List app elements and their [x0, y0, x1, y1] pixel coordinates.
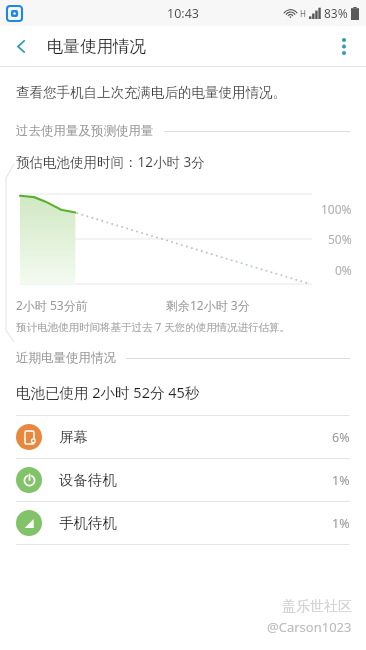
staticText: 50% — [328, 231, 352, 247]
staticText: 手机待机 — [59, 514, 117, 532]
button[interactable]: More options — [322, 26, 366, 66]
staticText: 2小时 53分前 — [16, 297, 88, 313]
staticText: 1% — [332, 472, 350, 489]
staticText: @Carson1023 — [267, 618, 352, 636]
staticText: 电量使用情况 — [47, 36, 146, 57]
staticText: 预估电池使用时间：12小时 3分 — [16, 153, 205, 171]
staticText: 6% — [332, 429, 350, 446]
staticText: 0% — [335, 262, 352, 278]
button[interactable]: 屏幕 — [0, 416, 366, 458]
button[interactable]: 手机待机 — [0, 502, 366, 544]
staticText: 过去使用量及预测使用量 — [16, 123, 154, 139]
staticText: 83% — [324, 5, 348, 21]
button[interactable]: Back — [0, 26, 42, 66]
staticText: 盖乐世社区 — [282, 598, 352, 616]
staticText: 设备待机 — [59, 471, 117, 489]
staticText: 屏幕 — [59, 428, 88, 446]
staticText: 近期电量使用情况 — [16, 350, 116, 366]
staticText: H — [300, 8, 306, 19]
button[interactable]: 设备待机 — [0, 459, 366, 501]
staticText: 查看您手机自上次充满电后的电量使用情况。 — [16, 84, 286, 101]
staticText: 电池已使用 2小时 52分 45秒 — [16, 382, 200, 402]
staticText: 预计电池使用时间将基于过去 7 天您的使用情况进行估算。 — [16, 320, 290, 334]
staticText: 10:43 — [167, 5, 199, 22]
staticText: 剩余12小时 3分 — [166, 297, 250, 313]
staticText: 1% — [332, 515, 350, 532]
staticText: 100% — [321, 201, 352, 217]
